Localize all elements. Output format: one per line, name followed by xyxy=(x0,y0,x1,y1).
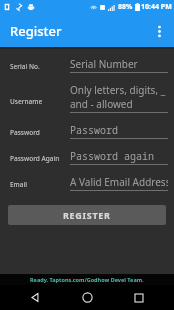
staticText: Only letters, digits, _ xyxy=(70,83,166,97)
button[interactable]: Username xyxy=(0,83,174,113)
staticText: Password xyxy=(70,123,118,137)
staticText: Username xyxy=(10,97,43,106)
staticText: REGISTER xyxy=(63,209,111,221)
staticText: Password again xyxy=(70,149,154,163)
button[interactable]: Home xyxy=(70,285,104,310)
staticText: A Valid Email Address xyxy=(70,175,168,189)
button[interactable]: Password xyxy=(0,123,174,139)
staticText: Serial Number xyxy=(70,57,138,71)
button[interactable]: Password Again xyxy=(0,149,174,165)
staticText: 88% xyxy=(118,2,133,12)
button[interactable]: Recent apps xyxy=(122,285,156,310)
staticText: Email xyxy=(10,180,28,189)
staticText: 10:44 PM xyxy=(141,2,172,12)
button[interactable]: More options xyxy=(144,16,174,46)
staticText: Password Again xyxy=(10,154,60,163)
button[interactable]: Back xyxy=(18,285,52,310)
staticText: and - allowed xyxy=(70,97,133,111)
staticText: Serial No. xyxy=(10,62,40,71)
staticText: Password xyxy=(10,128,40,137)
staticText: Ready. Taptons.com/Godhow Devel Team. xyxy=(30,276,144,283)
button[interactable]: Email xyxy=(0,175,174,191)
button[interactable]: REGISTER xyxy=(8,205,166,225)
staticText: Register xyxy=(10,22,62,40)
button[interactable]: Serial No. xyxy=(0,57,174,73)
